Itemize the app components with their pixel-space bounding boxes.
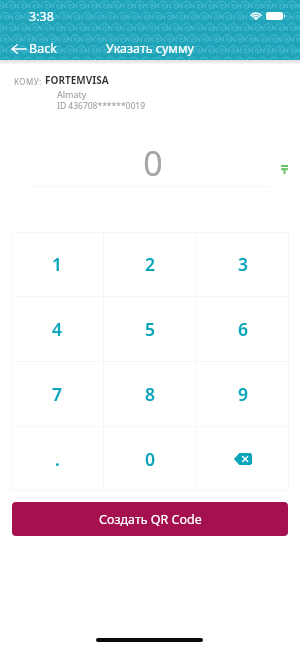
staticText: ID 436708******0019 [57,100,146,112]
staticText: КОМУ: [14,76,42,87]
staticText: FORTEMVISA [45,73,109,87]
staticText: 9 [238,382,249,406]
button[interactable]: 3 [197,232,289,296]
staticText: 0 [145,447,156,471]
staticText: 3:38 [29,8,54,25]
button[interactable]: 9 [197,362,289,426]
staticText: Back [29,40,57,57]
staticText: 0 [3,140,300,186]
button[interactable]: Backspace [197,427,289,491]
button[interactable]: 7 [11,362,103,426]
staticText: 4 [52,317,63,341]
staticText: 5 [145,317,156,341]
button[interactable]: 5 [104,297,196,361]
button[interactable]: Создать QR Code [12,502,288,536]
staticText: . [55,447,60,471]
button[interactable]: 4 [11,297,103,361]
staticText: Almaty [57,88,87,100]
staticText: 3 [238,252,249,276]
staticText: Указать сумму [0,40,300,57]
button[interactable]: 1 [11,232,103,296]
staticText: Создать QR Code [99,511,202,528]
staticText: 2 [145,252,156,276]
staticText: 1 [52,252,63,276]
staticText: 7 [52,382,63,406]
button[interactable]: 2 [104,232,196,296]
button[interactable]: Back [0,36,69,60]
button[interactable]: . [11,427,103,491]
button[interactable]: 0 [104,427,196,491]
staticText: 8 [145,382,156,406]
button[interactable]: 8 [104,362,196,426]
button[interactable]: 6 [197,297,289,361]
staticText: 6 [238,317,249,341]
